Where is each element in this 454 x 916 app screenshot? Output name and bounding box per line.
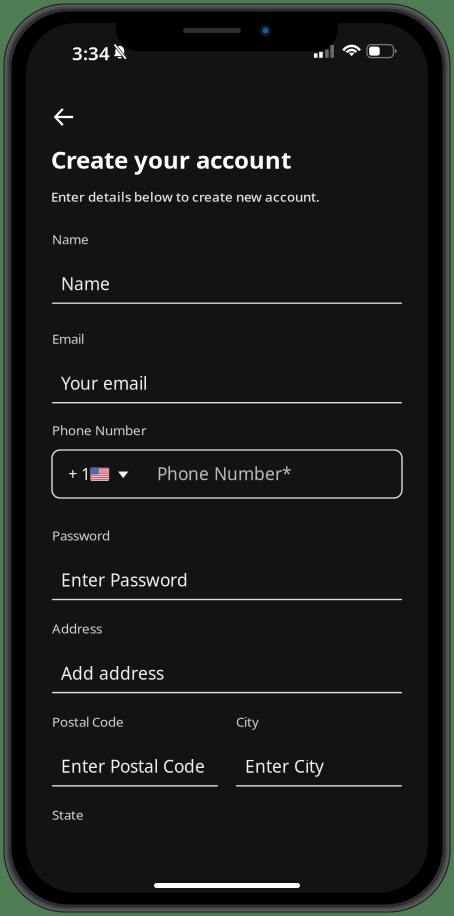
button[interactable]: Back [45, 99, 81, 135]
staticText: State [52, 806, 84, 823]
staticText: Enter details below to create new accoun… [51, 188, 320, 205]
staticText: + 1 [68, 463, 90, 484]
staticText: Enter Postal Code [61, 755, 205, 778]
staticText: Your email [61, 371, 147, 394]
staticText: Name [52, 230, 89, 248]
staticText: Create your account [51, 144, 291, 175]
staticText: Name [61, 272, 110, 295]
button[interactable]: + 1 [52, 450, 402, 498]
staticText: Enter Password [61, 568, 188, 591]
staticText: 3:34 [72, 41, 110, 65]
button[interactable]: Email [52, 331, 402, 403]
button[interactable]: Name [52, 232, 402, 304]
button[interactable]: City [236, 715, 402, 787]
staticText: Address [52, 619, 102, 637]
button[interactable]: Address [52, 621, 402, 693]
staticText: Phone Number* [157, 462, 292, 485]
staticText: Email [52, 330, 84, 347]
staticText: City [236, 713, 259, 730]
staticText: Postal Code [52, 713, 124, 730]
staticText: Password [52, 526, 110, 544]
button[interactable]: Password [52, 528, 402, 600]
staticText: Add address [61, 661, 164, 684]
staticText: Enter City [245, 755, 324, 778]
staticText: Phone Number [52, 421, 147, 439]
button[interactable]: Postal Code [52, 715, 218, 787]
